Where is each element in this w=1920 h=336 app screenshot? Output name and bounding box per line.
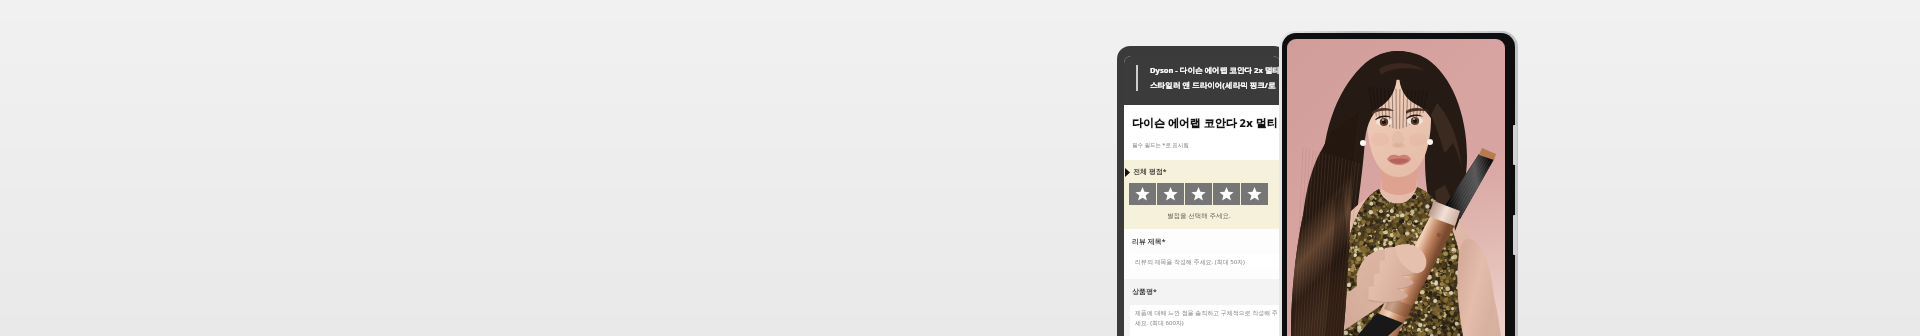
staticText: 전체 평점* [1133,167,1167,177]
staticText: 리뷰 제목* [1132,237,1166,247]
button[interactable] [1129,183,1156,205]
staticText: 상품평* [1132,287,1157,297]
button[interactable] [1213,183,1240,205]
staticText: 필수 필드는 *로 표시됨 [1132,141,1189,149]
button[interactable] [1157,183,1184,205]
other: Volume [1513,125,1517,165]
staticText: 별점을 선택해 주세요. [1167,211,1231,220]
other: Power [1513,215,1517,255]
staticText: Dyson - 다이슨 에어랩 코안다 2x 멀티 스타일러 앤 드라이어(세라… [1150,65,1280,90]
button[interactable] [1185,183,1212,205]
staticText: 다이슨 에어랩 코안다 2x 멀티 스타일러 [1132,115,1280,130]
button[interactable]: 제품에 대해 느낀 점을 솔직하고 구체적으로 작성해 주세요. (최대 600… [1130,305,1280,336]
button[interactable]: 리뷰의 제목을 작성해 주세요. (최대 50자) [1130,254,1280,269]
staticText: 리뷰의 제목을 작성해 주세요. (최대 50자) [1135,258,1245,266]
staticText: 제품에 대해 느낀 점을 솔직하고 구체적으로 작성해 주세요. (최대 600… [1135,309,1280,327]
button[interactable] [1241,183,1268,205]
